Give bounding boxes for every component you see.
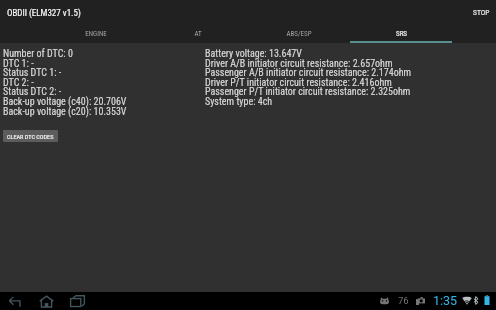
staticText: Number of DTC: 0: [3, 48, 73, 60]
staticText: DTC 1: -: [3, 58, 34, 70]
button[interactable]: CLEAR DTC CODES: [3, 130, 58, 142]
staticText: Passenger P/T initiator circuit resistan…: [205, 86, 411, 98]
staticText: ABS/ESP: [286, 30, 312, 38]
staticText: Driver A/B initiator circuit resistance:…: [205, 58, 393, 70]
staticText: STOP: [473, 8, 490, 17]
staticText: System type: 4ch: [205, 96, 273, 108]
staticText: OBDII (ELM327 v1.5): [7, 8, 81, 19]
button[interactable]: Home: [33, 292, 60, 310]
button[interactable]: ENGINE: [45, 21, 147, 43]
staticText: Status DTC 1: -: [3, 67, 62, 79]
staticText: AT: [194, 30, 202, 38]
staticText: CLEAR DTC CODES: [7, 133, 54, 140]
staticText: 1:35: [433, 293, 458, 308]
staticText: Passenger A/B initiator circuit resistan…: [205, 67, 412, 79]
button[interactable]: SRS: [350, 21, 452, 43]
staticText: SRS: [396, 30, 407, 38]
staticText: 76: [398, 295, 409, 306]
staticText: Battery voltage: 13.647V: [205, 48, 302, 60]
button[interactable]: Back: [3, 292, 28, 310]
button[interactable]: AT: [147, 21, 249, 43]
staticText: ENGINE: [85, 30, 107, 38]
staticText: Driver P/T initiator circuit resistance:…: [205, 77, 392, 89]
button[interactable]: STOP: [466, 2, 496, 23]
button[interactable]: ABS/ESP: [248, 21, 350, 43]
staticText: Back-up voltage (c20): 10.353V: [3, 106, 127, 118]
staticText: Back-up voltage (c40): 20.706V: [3, 96, 127, 108]
button[interactable]: Recent apps: [64, 292, 91, 310]
staticText: Status DTC 2: -: [3, 86, 62, 98]
staticText: DTC 2: -: [3, 77, 34, 89]
